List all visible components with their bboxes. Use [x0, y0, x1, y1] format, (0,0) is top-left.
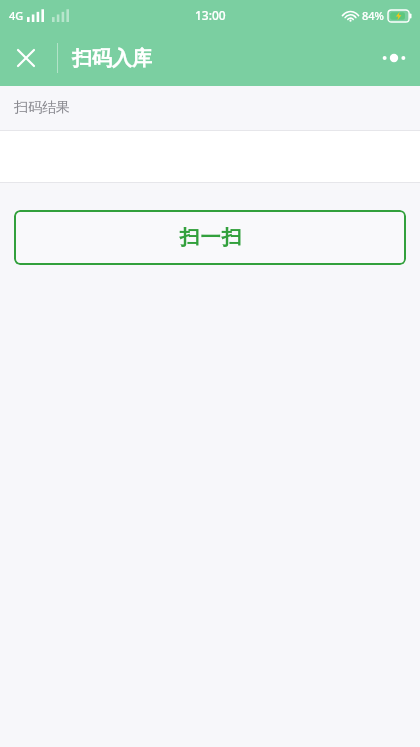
button[interactable]: Close: [0, 32, 52, 84]
staticText: 扫码结果: [14, 99, 70, 117]
staticText: 4G: [9, 8, 24, 23]
button[interactable]: 扫一扫: [14, 210, 406, 265]
staticText: 扫一扫: [179, 225, 242, 250]
staticText: 扫码入库: [72, 46, 152, 71]
button[interactable]: More options: [368, 32, 420, 84]
staticText: 13:00: [195, 7, 226, 23]
staticText: 84%: [362, 8, 384, 23]
